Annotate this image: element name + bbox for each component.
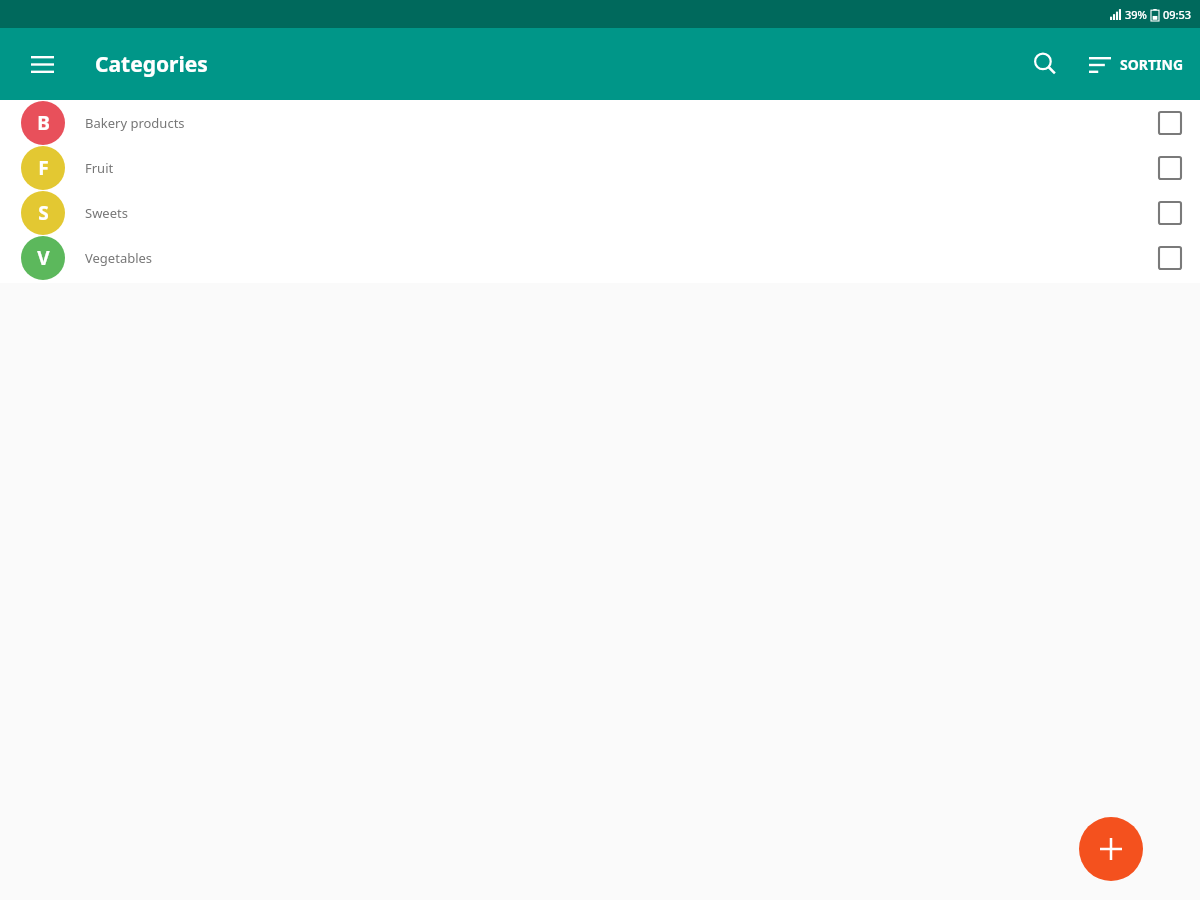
staticText: V <box>37 245 50 271</box>
button[interactable]: V <box>0 235 1200 280</box>
button[interactable]: SORTING <box>1083 45 1190 84</box>
button[interactable]: B <box>0 100 1200 145</box>
staticText: 09:53 <box>1163 7 1192 22</box>
staticText: SORTING <box>1120 55 1184 74</box>
button[interactable]: Open navigation menu <box>20 42 64 86</box>
button[interactable]: S <box>0 190 1200 235</box>
button[interactable]: Select Fruit <box>1148 146 1192 190</box>
staticText: Vegetables <box>85 249 153 267</box>
staticText: F <box>38 155 49 181</box>
staticText: S <box>38 200 49 226</box>
button[interactable]: Select Vegetables <box>1148 236 1192 280</box>
staticText: Fruit <box>85 159 114 177</box>
button[interactable]: Search <box>1021 40 1069 88</box>
button[interactable]: Add category <box>1079 817 1143 881</box>
staticText: Categories <box>95 50 208 79</box>
button[interactable]: Select Sweets <box>1148 191 1192 235</box>
staticText: 39% <box>1125 7 1147 22</box>
staticText: B <box>37 110 50 136</box>
staticText: Sweets <box>85 204 128 222</box>
staticText: Bakery products <box>85 114 185 132</box>
button[interactable]: Select Bakery products <box>1148 101 1192 145</box>
button[interactable]: F <box>0 145 1200 190</box>
